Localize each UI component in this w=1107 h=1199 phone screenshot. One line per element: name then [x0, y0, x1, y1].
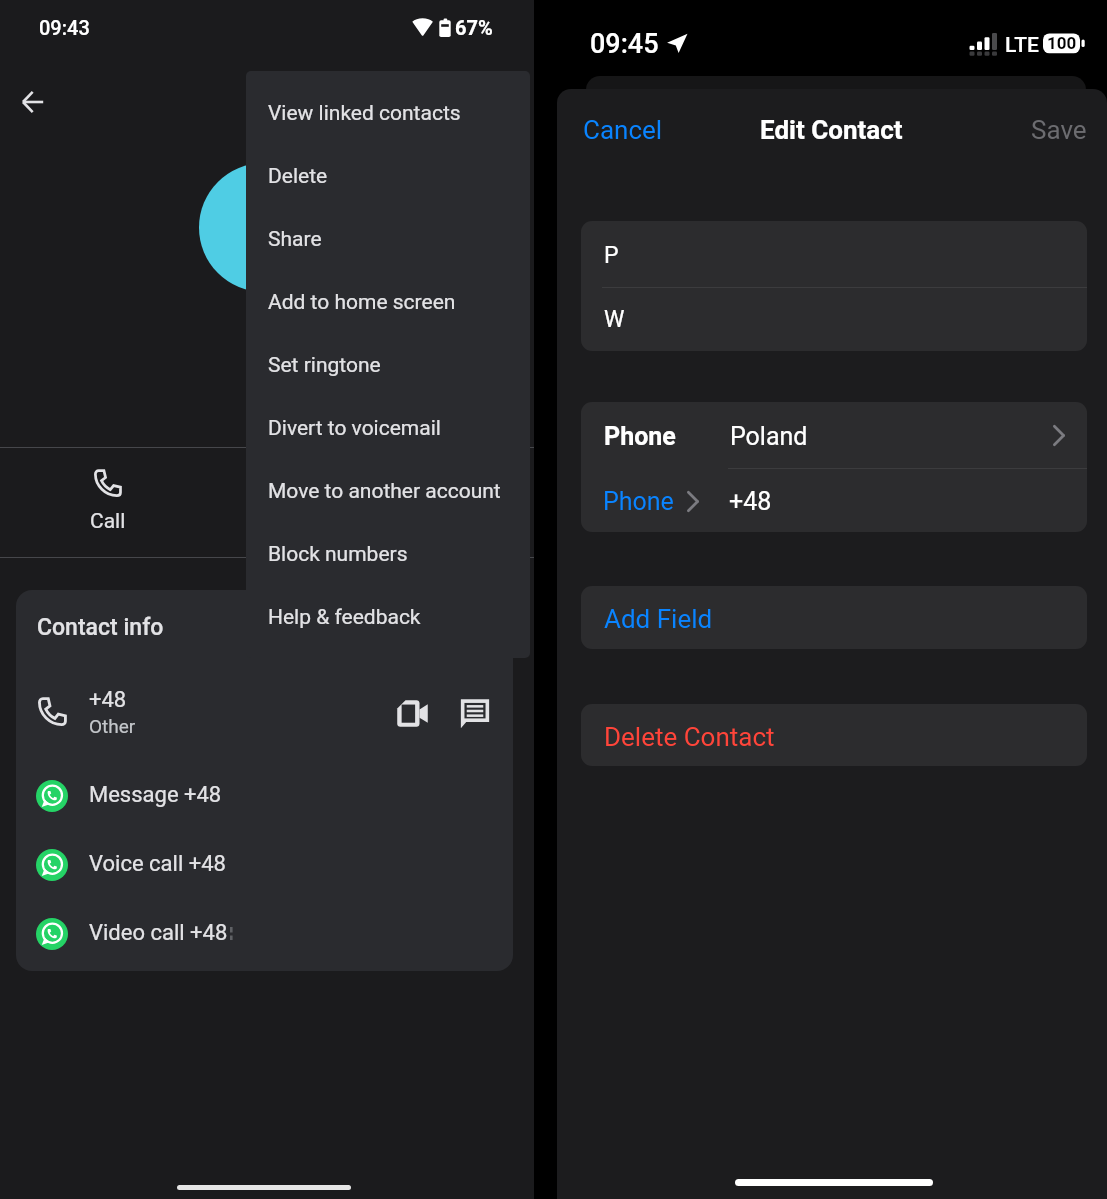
staticText: Add to home screen [268, 290, 456, 315]
staticText: Add Field [604, 604, 713, 634]
staticText: Block numbers [268, 542, 408, 567]
button[interactable]: Phone [581, 402, 1087, 468]
staticText: Divert to voicemail [268, 416, 441, 441]
button[interactable]: Cancel [583, 106, 679, 154]
staticText: Help & feedback [268, 605, 421, 630]
button[interactable]: Share [246, 208, 530, 271]
button[interactable]: Back [11, 80, 55, 124]
staticText: Video call +48 [89, 920, 228, 946]
staticText: 100 [1047, 33, 1077, 53]
staticText: Delete Contact [604, 722, 775, 752]
button[interactable]: P [581, 221, 1087, 287]
button[interactable]: Video call +48 [16, 908, 513, 960]
staticText: W [604, 306, 625, 333]
button[interactable]: Help & feedback [246, 586, 530, 649]
button[interactable]: Save [1031, 106, 1097, 154]
button[interactable]: Message +48 [16, 770, 513, 822]
button[interactable]: Video call [396, 697, 429, 730]
staticText: +48 [729, 487, 772, 516]
staticText: 67% [455, 16, 493, 39]
button[interactable]: Phone [581, 468, 1087, 532]
staticText: Share [268, 227, 322, 252]
button[interactable]: Divert to voicemail [246, 397, 530, 460]
staticText: Delete [268, 164, 328, 189]
button[interactable]: Move to another account [246, 460, 530, 523]
staticText: 09:45 [590, 28, 659, 60]
staticText: Call [90, 509, 126, 534]
button[interactable]: Add to home screen [246, 271, 530, 334]
staticText: 09:43 [39, 16, 90, 39]
button[interactable]: Block numbers [246, 523, 530, 586]
staticText: Move to another account [268, 479, 501, 504]
staticText: Save [1031, 115, 1087, 145]
staticText: Phone [604, 422, 676, 451]
staticText: LTE [1005, 33, 1039, 58]
button[interactable]: Delete Contact [581, 704, 1087, 766]
staticText: Other [89, 715, 136, 737]
button[interactable]: Set ringtone [246, 334, 530, 397]
staticText: Edit Contact [760, 115, 903, 145]
button[interactable]: W [581, 287, 1087, 351]
staticText: View linked contacts [268, 101, 461, 126]
staticText: Phone [603, 487, 674, 516]
button[interactable]: Delete [246, 145, 530, 208]
button[interactable]: Add Field [581, 586, 1087, 649]
staticText: Poland [730, 422, 808, 451]
button[interactable]: Message [459, 698, 491, 730]
staticText: +48 [89, 687, 127, 713]
staticText: Voice call +48 [89, 851, 226, 877]
button[interactable]: Voice call +48 [16, 839, 513, 891]
staticText: Cancel [583, 115, 663, 145]
staticText: P [604, 242, 619, 269]
button[interactable]: +48 [16, 674, 513, 736]
button[interactable]: Call [48, 447, 168, 555]
staticText: Set ringtone [268, 353, 381, 378]
button[interactable]: View linked contacts [246, 82, 530, 145]
staticText: Contact info [37, 614, 164, 641]
staticText: Message +48 [89, 782, 222, 808]
